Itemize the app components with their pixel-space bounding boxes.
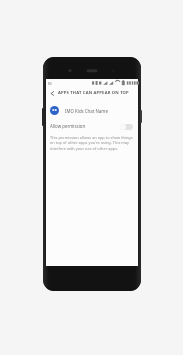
button[interactable]: IMO Kids Chat Name — [46, 102, 138, 119]
button[interactable]: Back — [46, 87, 58, 99]
staticText: IMO Kids Chat Name — [65, 108, 108, 114]
staticText: APPS THAT CAN APPEAR ON TOP — [58, 90, 129, 96]
staticText: M — [48, 81, 52, 86]
staticText: This permission allows an app to show th… — [50, 135, 133, 152]
staticText: Allow permission — [50, 123, 86, 129]
button[interactable]: Allow permission — [46, 119, 138, 133]
